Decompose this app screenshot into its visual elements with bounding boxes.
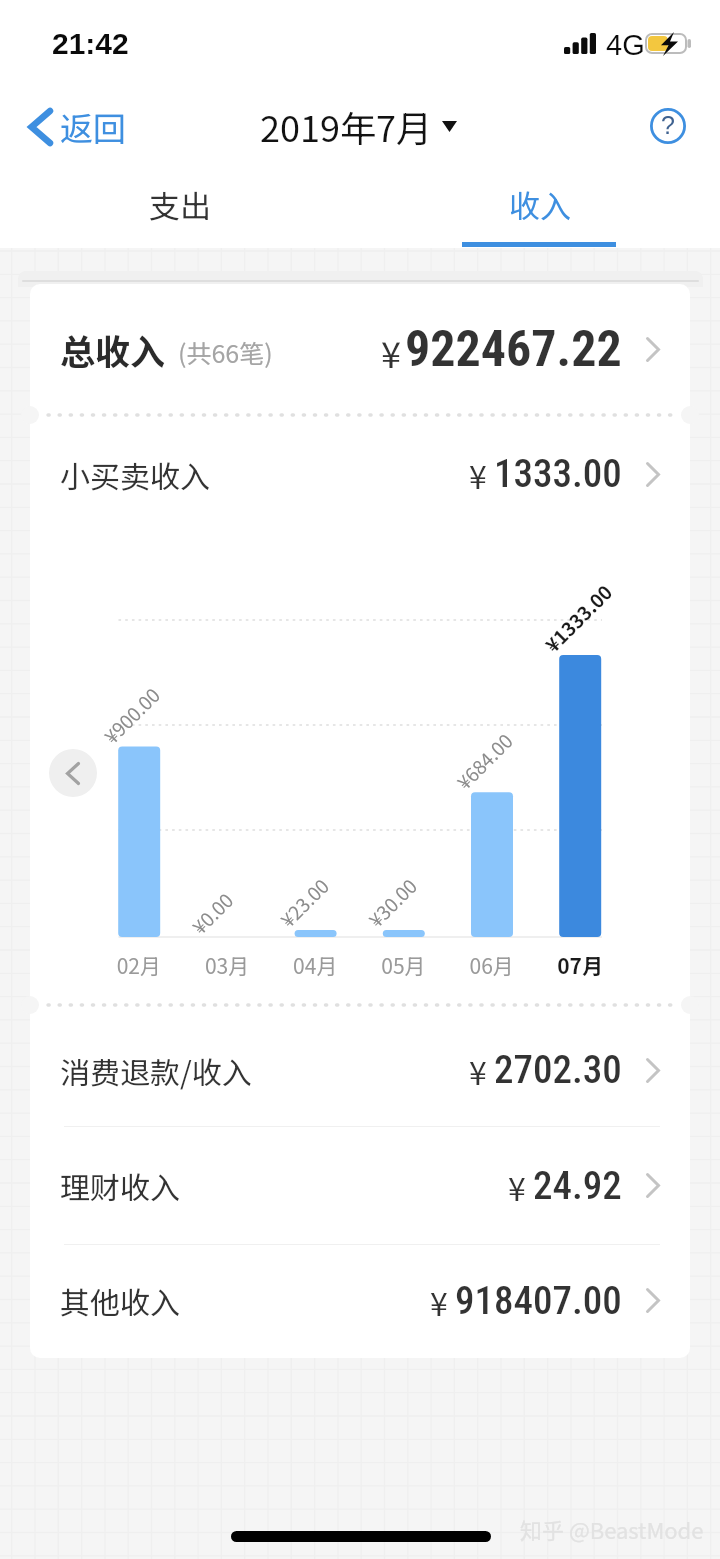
staticText: ? xyxy=(661,111,675,139)
button[interactable]: 消费退款/收入 xyxy=(30,1010,690,1130)
button[interactable]: 总收入 xyxy=(30,284,690,415)
staticText: 1333.00 xyxy=(494,451,622,497)
button[interactable]: 返回 xyxy=(22,101,132,153)
staticText: (共66笔) xyxy=(178,334,273,370)
staticText: 知乎 @BeastMode xyxy=(520,1513,704,1545)
staticText: 2702.30 xyxy=(494,1047,622,1093)
button[interactable]: Help xyxy=(646,104,690,148)
button[interactable]: 支出 xyxy=(0,172,360,236)
staticText: 4G xyxy=(606,29,645,61)
staticText: 小买卖收入 xyxy=(60,453,210,496)
staticText: ¥ xyxy=(381,326,401,378)
staticText: 总收入 xyxy=(60,324,166,375)
button[interactable]: 小买卖收入 xyxy=(30,418,690,530)
button[interactable]: Previous months xyxy=(49,749,97,797)
staticText: 返回 xyxy=(60,103,126,151)
staticText: 理财收入 xyxy=(60,1164,180,1207)
staticText: 2019年7月 xyxy=(260,100,432,152)
staticText: 支出 xyxy=(149,182,211,227)
staticText: 收入 xyxy=(509,182,571,227)
staticText: 21:42 xyxy=(52,27,129,61)
button[interactable]: 其他收入 xyxy=(30,1242,690,1359)
staticText: ¥ xyxy=(430,1279,448,1325)
staticText: 918407.00 xyxy=(455,1278,622,1324)
staticText: 消费退款/收入 xyxy=(60,1049,252,1092)
button[interactable]: 2019年7月 xyxy=(256,100,461,152)
button[interactable]: 理财收入 xyxy=(30,1127,690,1244)
button[interactable]: 收入 xyxy=(360,172,720,247)
staticText: ¥ xyxy=(469,1048,487,1094)
staticText: 24.92 xyxy=(533,1163,622,1209)
staticText: ¥ xyxy=(508,1164,526,1210)
staticText: 其他收入 xyxy=(60,1279,180,1322)
staticText: 922467.22 xyxy=(405,320,622,379)
staticText: ¥ xyxy=(469,452,487,498)
